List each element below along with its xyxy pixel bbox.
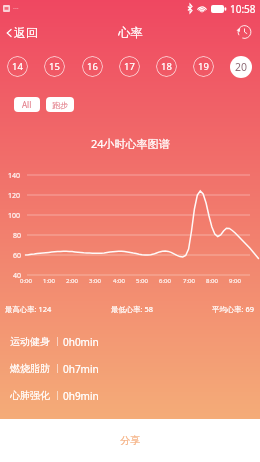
staticText: 80 xyxy=(13,231,22,241)
button[interactable]: All xyxy=(14,97,40,112)
staticText: 100 xyxy=(8,211,21,221)
staticText: 7:00 xyxy=(183,277,195,285)
staticText: 2:00 xyxy=(66,277,78,285)
staticText: 120 xyxy=(8,191,21,201)
staticText: 返回 xyxy=(14,25,38,40)
staticText: 19 xyxy=(198,60,209,73)
staticText: 9:00 xyxy=(229,277,241,285)
staticText: 16 xyxy=(87,60,98,73)
staticText: 0h7min xyxy=(63,362,99,376)
button[interactable]: 14 xyxy=(7,56,28,77)
staticText: 15 xyxy=(49,60,60,73)
button[interactable]: 运动健身 xyxy=(0,329,260,354)
button[interactable]: 19 xyxy=(193,56,214,77)
button[interactable]: 18 xyxy=(156,56,177,77)
button[interactable]: History xyxy=(229,17,260,47)
button[interactable]: 燃烧脂肪 xyxy=(0,356,260,381)
staticText: ··· xyxy=(13,4,19,14)
staticText: 14 xyxy=(12,60,23,73)
staticText: 1:00 xyxy=(43,277,55,285)
staticText: 0h0min xyxy=(63,335,99,349)
button[interactable]: 20 xyxy=(230,56,252,78)
button[interactable]: 心肺强化 xyxy=(0,383,260,408)
staticText: All xyxy=(22,99,32,110)
staticText: 分享 xyxy=(120,434,140,447)
staticText: 平均心率: 69 xyxy=(212,304,254,314)
staticText: 心率 xyxy=(118,25,143,40)
staticText: 4:00 xyxy=(113,277,125,285)
staticText: 3:00 xyxy=(89,277,101,285)
staticText: 60 xyxy=(13,251,22,261)
staticText: 8:00 xyxy=(206,277,218,285)
button[interactable]: 17 xyxy=(119,56,140,77)
staticText: 0:00 xyxy=(20,277,32,285)
staticText: 24小时心率图谱 xyxy=(91,136,170,151)
staticText: 20 xyxy=(235,60,248,74)
button[interactable]: 分享 xyxy=(74,424,186,457)
staticText: 运动健身 xyxy=(10,335,50,348)
staticText: 6:00 xyxy=(159,277,171,285)
staticText: 40 xyxy=(13,271,22,281)
staticText: 心肺强化 xyxy=(10,389,50,402)
staticText: 5:00 xyxy=(136,277,148,285)
staticText: 10:58 xyxy=(230,2,256,16)
staticText: 17 xyxy=(124,60,135,73)
staticText: 燃烧脂肪 xyxy=(10,362,50,375)
staticText: 18 xyxy=(161,60,172,73)
staticText: 跑步 xyxy=(52,100,68,110)
staticText: 最高心率: 124 xyxy=(5,304,52,314)
button[interactable]: 跑步 xyxy=(46,97,74,112)
staticText: 最低心率: 58 xyxy=(111,304,153,314)
staticText: 0h9min xyxy=(63,389,99,403)
button[interactable]: 16 xyxy=(82,56,103,77)
button[interactable]: 15 xyxy=(44,56,65,77)
button[interactable]: 返回 xyxy=(0,21,48,44)
staticText: 140 xyxy=(8,171,21,181)
